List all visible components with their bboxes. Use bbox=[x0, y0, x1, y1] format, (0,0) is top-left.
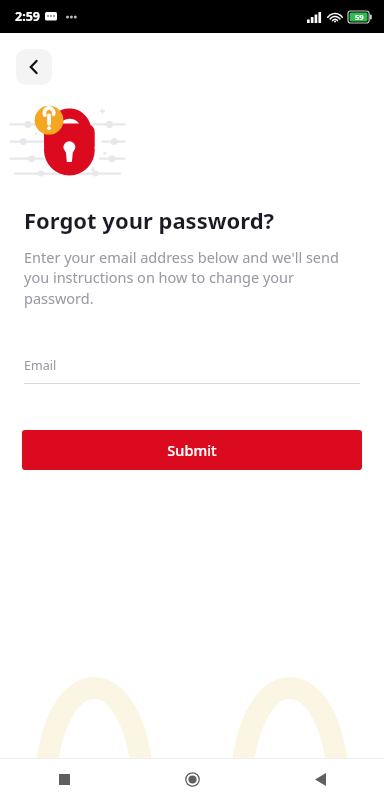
staticText: 59 bbox=[355, 12, 364, 22]
staticText: Enter your email address below and we'll… bbox=[24, 247, 360, 309]
staticText: Email bbox=[24, 357, 57, 374]
button[interactable]: Back bbox=[256, 759, 384, 800]
button[interactable]: Back bbox=[16, 49, 52, 85]
button[interactable]: Submit bbox=[22, 430, 362, 470]
button[interactable]: Home bbox=[128, 759, 256, 800]
button[interactable]: Recent apps bbox=[0, 759, 128, 800]
staticText: 2:59 bbox=[15, 8, 40, 25]
staticText: Submit bbox=[167, 440, 217, 460]
staticText: Forgot your password? bbox=[24, 205, 275, 235]
button[interactable]: Email bbox=[24, 357, 360, 384]
